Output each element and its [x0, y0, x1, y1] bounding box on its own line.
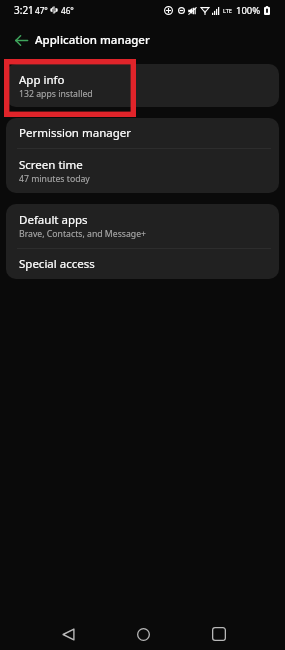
staticText: Special access [19, 256, 95, 272]
staticText: 132 apps installed [19, 88, 93, 100]
staticText: Screen time [19, 157, 83, 173]
button[interactable]: Back [7, 26, 35, 54]
button[interactable]: Screen time [6, 149, 279, 193]
button[interactable]: Home [127, 618, 159, 650]
staticText: Permission manager [19, 125, 132, 141]
staticText: 47 minutes today [19, 173, 90, 185]
staticText: 3:21 [14, 3, 34, 17]
staticText: LTE [223, 7, 232, 14]
staticText: 100% [236, 4, 261, 17]
staticText: 46° [61, 5, 74, 16]
button[interactable]: Permission manager [6, 118, 279, 148]
staticText: 47° [35, 5, 48, 16]
staticText: App info [19, 72, 65, 88]
button[interactable]: Default apps [6, 204, 279, 248]
button[interactable]: Back [52, 618, 84, 650]
staticText: Default apps [19, 212, 88, 228]
button[interactable]: Special access [6, 249, 279, 279]
staticText: Application manager [35, 32, 150, 48]
staticText: Brave, Contacts, and Message+ [19, 228, 147, 240]
button[interactable]: Recent apps [203, 618, 235, 650]
button[interactable]: App info [6, 64, 279, 107]
